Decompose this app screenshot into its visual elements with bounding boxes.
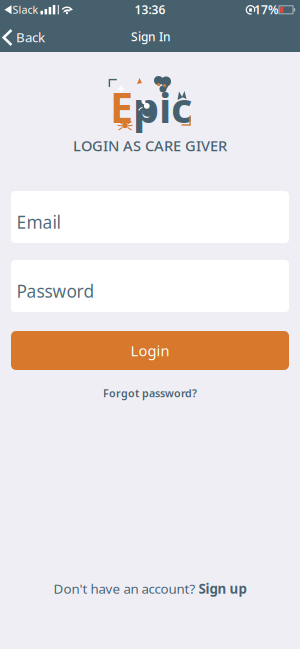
staticText: Slack: [12, 3, 38, 17]
button[interactable]: Email: [11, 191, 289, 243]
staticText: Don't have an account? Sign up: [53, 580, 246, 597]
staticText: Email: [16, 210, 60, 233]
staticText: Password: [16, 279, 94, 302]
button[interactable]: Login: [11, 331, 289, 370]
staticText: 17%: [254, 2, 279, 18]
staticText: LOGIN AS CARE GIVER: [73, 136, 227, 155]
button[interactable]: Forgot password?: [103, 386, 197, 400]
staticText: Forgot password?: [103, 386, 197, 400]
staticText: Sign In: [131, 28, 171, 44]
button[interactable]: Don't have an account? Sign up: [53, 580, 246, 597]
button[interactable]: Password: [11, 260, 289, 312]
staticText: Epic: [110, 80, 192, 134]
staticText: 13:36: [134, 1, 165, 17]
button[interactable]: Back: [0, 26, 48, 46]
staticText: Back: [16, 28, 45, 46]
staticText: Login: [130, 341, 169, 360]
